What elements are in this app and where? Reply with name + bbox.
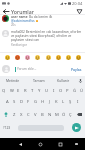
staticText: Metinde <box>6 78 20 83</box>
button[interactable]: Kullanir <box>51 76 76 85</box>
button[interactable]: Send <box>68 121 85 134</box>
staticText: S <box>13 99 16 105</box>
staticText: U <box>45 88 49 94</box>
button[interactable]: React <box>44 53 52 61</box>
staticText: Ş <box>69 99 72 105</box>
staticText: Yanitlari gor <box>11 43 27 47</box>
button[interactable]: Back <box>0 7 11 15</box>
button[interactable]: X <box>18 108 25 121</box>
button[interactable]: React <box>23 53 31 61</box>
staticText: C <box>27 112 30 118</box>
button[interactable]: mafia002 Benimkinl en cok kazandiran, of… <box>0 30 85 47</box>
button[interactable]: React <box>3 53 11 61</box>
button[interactable]: N <box>46 108 53 121</box>
button[interactable]: M <box>53 108 60 121</box>
button[interactable]: React <box>74 53 82 61</box>
staticText: G <box>34 99 38 105</box>
button[interactable]: S <box>11 96 18 108</box>
button[interactable]: Ç <box>67 108 74 121</box>
staticText: Z <box>13 112 16 118</box>
button[interactable]: I <box>50 85 57 96</box>
button[interactable]: Back <box>15 139 25 149</box>
staticText: Bu da benim ilk <box>29 15 53 19</box>
button[interactable]: Shift <box>0 108 11 121</box>
button[interactable]: Ü <box>78 85 85 96</box>
button[interactable]: P <box>64 85 71 96</box>
button[interactable]: C <box>25 108 32 121</box>
staticText: Kullanir <box>57 78 70 83</box>
button[interactable]: U <box>43 85 50 96</box>
button[interactable]: ?123 <box>0 121 14 134</box>
staticText: 20:04 <box>72 1 83 6</box>
button[interactable]: Paylas <box>70 65 83 74</box>
staticText: user name <box>11 15 28 19</box>
button[interactable]: Space <box>14 121 68 134</box>
button[interactable]: G <box>32 96 39 108</box>
staticText: V <box>34 112 37 118</box>
button[interactable]: E <box>15 85 22 96</box>
button[interactable]: Q <box>0 85 8 96</box>
button[interactable]: React <box>13 53 21 61</box>
staticText: Paylas <box>71 67 82 72</box>
staticText: Ü <box>80 88 84 94</box>
staticText: W <box>10 88 14 94</box>
button[interactable]: Metinde <box>0 76 26 85</box>
staticText: J <box>49 99 51 105</box>
staticText: 20s <box>11 23 16 27</box>
button[interactable]: Z <box>11 108 18 121</box>
button[interactable]: W <box>8 85 15 96</box>
button[interactable]: Ğ <box>71 85 78 96</box>
staticText: Yorumlar <box>11 8 34 15</box>
button[interactable]: Home <box>35 139 45 149</box>
button[interactable]: React <box>33 53 41 61</box>
staticText: L <box>62 99 65 105</box>
button[interactable]: React <box>64 53 72 61</box>
staticText: N <box>48 112 52 118</box>
button[interactable]: Ö <box>60 108 67 121</box>
button[interactable]: Y <box>36 85 43 96</box>
staticText: mafia002 Benimkinl en cok kazandiran, of… <box>11 30 83 42</box>
staticText: Ç <box>69 112 72 118</box>
button[interactable]: A <box>4 96 11 108</box>
button[interactable]: B <box>39 108 46 121</box>
staticText: P <box>66 88 69 94</box>
staticText: O <box>59 88 63 94</box>
button[interactable]: Ş <box>67 96 74 108</box>
button[interactable]: user name <box>0 15 85 27</box>
staticText: R <box>24 88 27 94</box>
staticText: I <box>77 99 79 105</box>
staticText: F <box>27 99 30 105</box>
button[interactable]: F <box>25 96 32 108</box>
button[interactable]: O <box>57 85 64 96</box>
staticText: Q <box>2 88 6 94</box>
staticText: ?123 <box>3 125 11 130</box>
staticText: T <box>31 88 34 94</box>
button[interactable]: Share <box>73 7 85 15</box>
button[interactable]: V <box>32 108 39 121</box>
staticText: Yorum ekle... <box>17 67 37 71</box>
staticText: X <box>20 112 23 118</box>
button[interactable]: T <box>29 85 36 96</box>
staticText: B <box>41 112 44 118</box>
staticText: @adsiniramifiss <box>11 19 35 23</box>
staticText: H <box>41 99 45 105</box>
staticText: Tamam <box>33 78 45 83</box>
button[interactable]: Voice input <box>76 76 85 85</box>
button[interactable]: H <box>39 96 46 108</box>
staticText: K <box>55 99 58 105</box>
button[interactable]: L <box>60 96 67 108</box>
button[interactable]: K <box>53 96 60 108</box>
staticText: Y <box>38 88 41 94</box>
button[interactable]: Recents <box>55 139 65 149</box>
button[interactable]: Change keyboard <box>71 139 81 149</box>
button[interactable]: Backspace <box>74 108 85 121</box>
button[interactable]: D <box>18 96 25 108</box>
button[interactable]: I <box>74 96 81 108</box>
staticText: Ö <box>62 112 66 118</box>
staticText: A <box>6 99 9 105</box>
button[interactable]: J <box>46 96 53 108</box>
button[interactable]: Tamam <box>26 76 51 85</box>
button[interactable]: R <box>22 85 29 96</box>
button[interactable]: React <box>54 53 62 61</box>
staticText: E <box>17 88 20 94</box>
